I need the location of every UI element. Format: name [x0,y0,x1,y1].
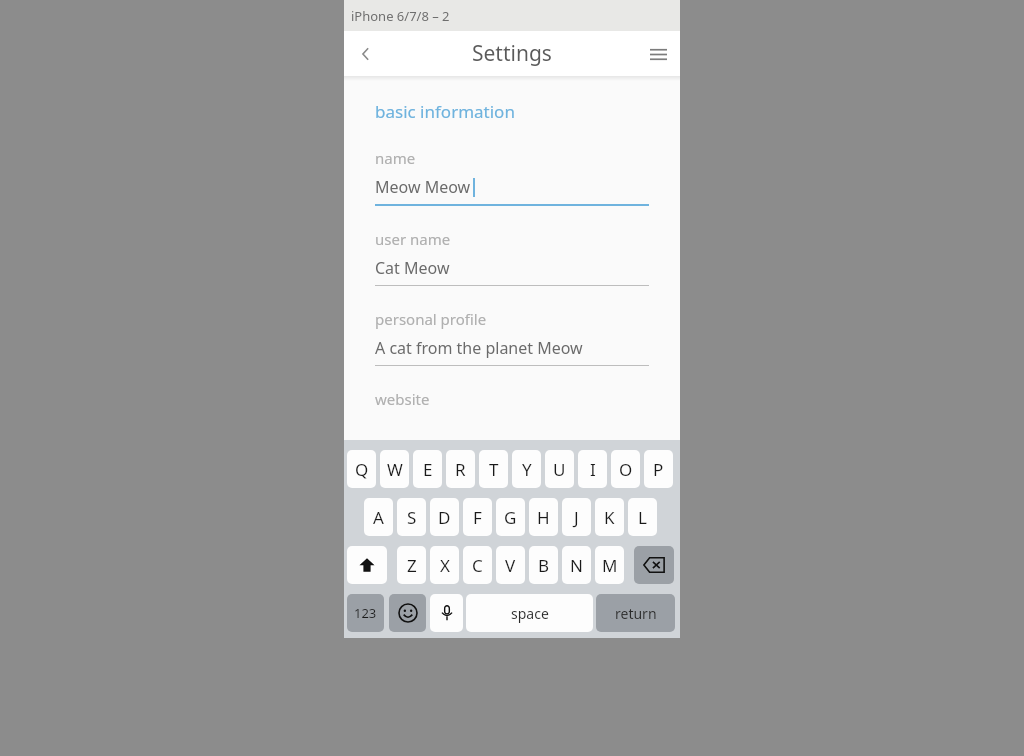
staticText: return [615,604,657,623]
button[interactable]: H [529,498,558,536]
staticText: J [574,506,579,529]
other: Backspace [643,554,665,576]
button[interactable]: M [595,546,624,584]
button[interactable]: Shift [347,546,387,584]
button[interactable]: Z [397,546,426,584]
other: Shift [358,556,376,574]
staticText: Y [522,458,532,481]
button[interactable]: N [562,546,591,584]
staticText: W [387,458,403,481]
staticText: X [440,554,450,577]
staticText: F [473,506,482,529]
staticText: 123 [354,604,377,622]
staticText: T [489,458,499,481]
button[interactable]: Backspace [634,546,674,584]
staticText: P [653,458,664,481]
staticText: C [472,554,483,577]
staticText: name [375,148,416,168]
button[interactable]: U [545,450,574,488]
staticText: H [537,506,550,529]
staticText: N [570,554,583,577]
button[interactable]: K [595,498,624,536]
other: Emoji [398,603,418,623]
staticText: R [455,458,466,481]
staticText: O [619,458,633,481]
button[interactable]: L [628,498,657,536]
staticText: U [553,458,566,481]
button[interactable]: G [496,498,525,536]
button[interactable]: P [644,450,673,488]
button[interactable]: name [375,123,649,206]
staticText: space [511,604,549,623]
button[interactable]: E [413,450,442,488]
staticText: S [407,506,417,529]
staticText: personal profile [375,309,487,329]
button[interactable]: V [496,546,525,584]
staticText: G [504,506,517,529]
staticText: Settings [472,39,552,68]
staticText: E [423,458,433,481]
button[interactable]: Emoji [389,594,426,632]
staticText: V [505,554,516,577]
staticText: I [590,458,596,481]
staticText: M [602,554,618,577]
button[interactable]: O [611,450,640,488]
staticText: D [438,506,451,529]
button[interactable]: C [463,546,492,584]
staticText: A [373,506,384,529]
staticText: iPhone 6/7/8 – 2 [351,7,450,25]
staticText: Meow Meow [375,176,471,198]
button[interactable]: S [397,498,426,536]
button[interactable]: user name [375,206,649,286]
staticText: website [375,389,430,409]
staticText: B [538,554,550,577]
staticText: Z [407,554,417,577]
staticText: L [638,506,647,529]
button[interactable]: Dictation [430,594,463,632]
staticText: A cat from the planet Meow [375,337,583,359]
button[interactable]: F [463,498,492,536]
button[interactable]: T [479,450,508,488]
other: Dictation [438,604,456,622]
button[interactable]: basic information [375,100,515,123]
button[interactable]: space [466,594,593,632]
button[interactable]: Back [344,32,388,76]
button[interactable]: B [529,546,558,584]
button[interactable]: A [364,498,393,536]
button[interactable]: R [446,450,475,488]
button[interactable]: X [430,546,459,584]
button[interactable]: I [578,450,607,488]
staticText: Cat Meow [375,257,450,279]
button[interactable]: personal profile [375,286,649,366]
button[interactable]: Q [347,450,376,488]
staticText: Q [355,458,369,481]
staticText: K [604,506,615,529]
button[interactable]: Menu [636,32,680,76]
button[interactable]: return [596,594,675,632]
staticText: user name [375,229,451,249]
button[interactable]: Y [512,450,541,488]
button[interactable]: 123 [347,594,384,632]
button[interactable]: D [430,498,459,536]
button[interactable]: J [562,498,591,536]
button[interactable]: W [380,450,409,488]
